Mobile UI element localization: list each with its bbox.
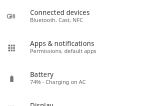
- staticText: Permissions, default apps: [30, 47, 97, 54]
- staticText: 74% - Charging on AC: [30, 78, 86, 85]
- button[interactable]: Display: [0, 94, 158, 106]
- staticText: Bluetooth, Cast, NFC: [30, 16, 84, 23]
- button[interactable]: Battery: [0, 63, 158, 94]
- button[interactable]: Apps & notifications: [0, 32, 158, 63]
- staticText: Apps & notifications: [30, 39, 95, 48]
- staticText: Display: [30, 101, 54, 106]
- staticText: Battery: [30, 70, 54, 79]
- staticText: Connected devices: [30, 8, 90, 17]
- button[interactable]: Connected devices: [0, 1, 158, 32]
